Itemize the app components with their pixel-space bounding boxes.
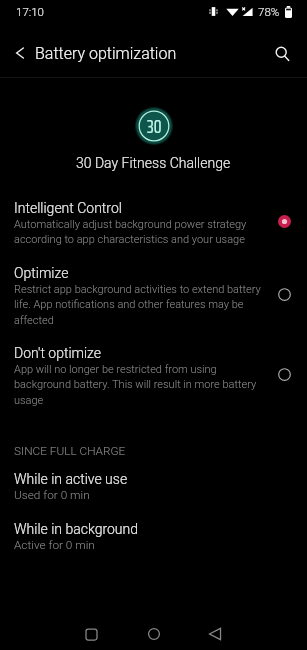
staticText: 78% bbox=[258, 5, 280, 18]
staticText: Restrict app background activities to ex… bbox=[14, 283, 262, 327]
staticText: While in background bbox=[14, 521, 139, 537]
staticText: Used for 0 min bbox=[14, 488, 90, 502]
staticText: 30 bbox=[147, 111, 162, 142]
button[interactable]: Back bbox=[195, 614, 235, 650]
staticText: App will no longer be restricted from us… bbox=[14, 363, 262, 407]
staticText: Active for 0 min bbox=[14, 538, 95, 552]
button[interactable]: Back bbox=[1, 34, 39, 72]
staticText: Don't optimize bbox=[14, 345, 102, 361]
staticText: 30 Day Fitness Challenge bbox=[76, 155, 231, 171]
staticText: Intelligent Control bbox=[14, 200, 122, 216]
staticText: Automatically adjust background power st… bbox=[14, 218, 262, 246]
button[interactable]: Don't optimize bbox=[0, 345, 307, 407]
button[interactable]: Recent apps bbox=[71, 614, 111, 650]
button[interactable]: Intelligent Control bbox=[0, 200, 307, 246]
staticText: While in active use bbox=[14, 471, 128, 487]
button[interactable]: Home bbox=[134, 614, 174, 650]
staticText: 17:10 bbox=[16, 5, 44, 18]
staticText: Battery optimization bbox=[35, 44, 177, 63]
button[interactable]: Optimize bbox=[0, 265, 307, 327]
button[interactable]: Search bbox=[266, 38, 298, 70]
staticText: Optimize bbox=[14, 265, 69, 281]
staticText: SINCE FULL CHARGE bbox=[14, 444, 126, 458]
